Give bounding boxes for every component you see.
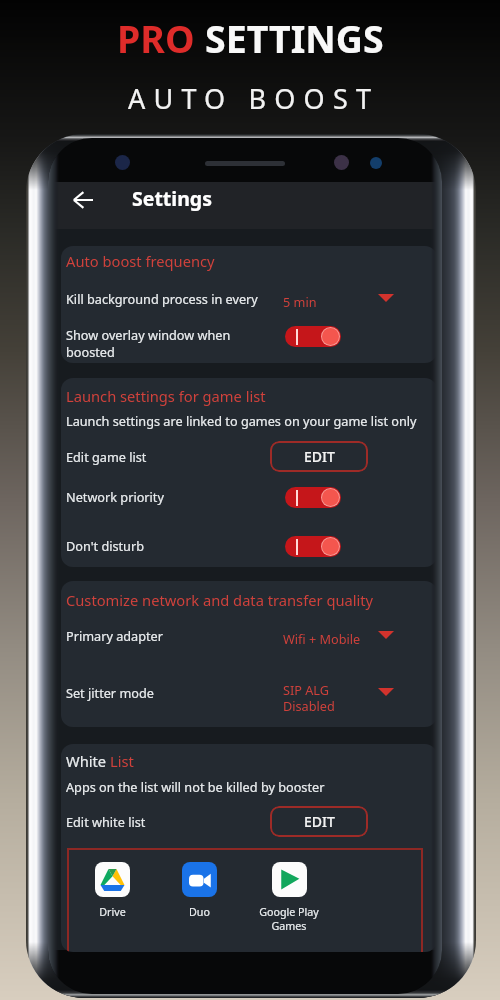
- button[interactable]: Back: [66, 183, 100, 217]
- button[interactable]: Toggle: [285, 536, 341, 557]
- button[interactable]: Wifi + Mobile: [283, 630, 361, 647]
- staticText: Edit game list: [66, 448, 147, 465]
- staticText: AUTO BOOST: [128, 80, 380, 117]
- staticText: List: [110, 751, 134, 771]
- staticText: Auto boost frequency: [66, 251, 215, 271]
- button[interactable]: Toggle: [285, 326, 341, 347]
- staticText: 5 min: [283, 293, 317, 310]
- staticText: Wifi + Mobile: [283, 630, 361, 647]
- button[interactable]: Duo: [159, 862, 239, 920]
- button[interactable]: EDIT: [270, 441, 368, 472]
- staticText: Drive: [99, 905, 126, 920]
- staticText: EDIT: [304, 447, 335, 466]
- button[interactable]: SIP ALG Disabled: [283, 681, 335, 715]
- button[interactable]: Toggle: [285, 487, 341, 508]
- button[interactable]: EDIT: [270, 806, 368, 837]
- staticText: EDIT: [304, 812, 335, 831]
- staticText: Duo: [189, 905, 210, 920]
- staticText: Launch settings for game list: [66, 386, 266, 406]
- button[interactable]: Google Play Games: [249, 862, 329, 933]
- staticText: Settings: [132, 185, 212, 212]
- staticText: PRO: [117, 13, 205, 64]
- staticText: Launch settings are linked to games on y…: [66, 412, 417, 429]
- staticText: Show overlay window when boosted: [66, 326, 231, 361]
- staticText: Customize network and data transfer qual…: [66, 590, 374, 610]
- staticText: Edit white list: [66, 813, 146, 830]
- staticText: Don't disturb: [66, 537, 145, 554]
- button[interactable]: Drive: [72, 862, 152, 920]
- button[interactable]: 5 min: [283, 293, 317, 310]
- staticText: Kill background process in every: [66, 290, 258, 307]
- staticText: White: [66, 751, 110, 771]
- staticText: Network priority: [66, 488, 164, 505]
- staticText: Google Play Games: [259, 905, 319, 933]
- staticText: Set jitter mode: [66, 684, 154, 701]
- staticText: SETTINGS: [205, 13, 384, 64]
- staticText: Apps on the list will not be killed by b…: [66, 778, 325, 795]
- staticText: Primary adapter: [66, 627, 163, 644]
- staticText: SIP ALG Disabled: [283, 681, 335, 715]
